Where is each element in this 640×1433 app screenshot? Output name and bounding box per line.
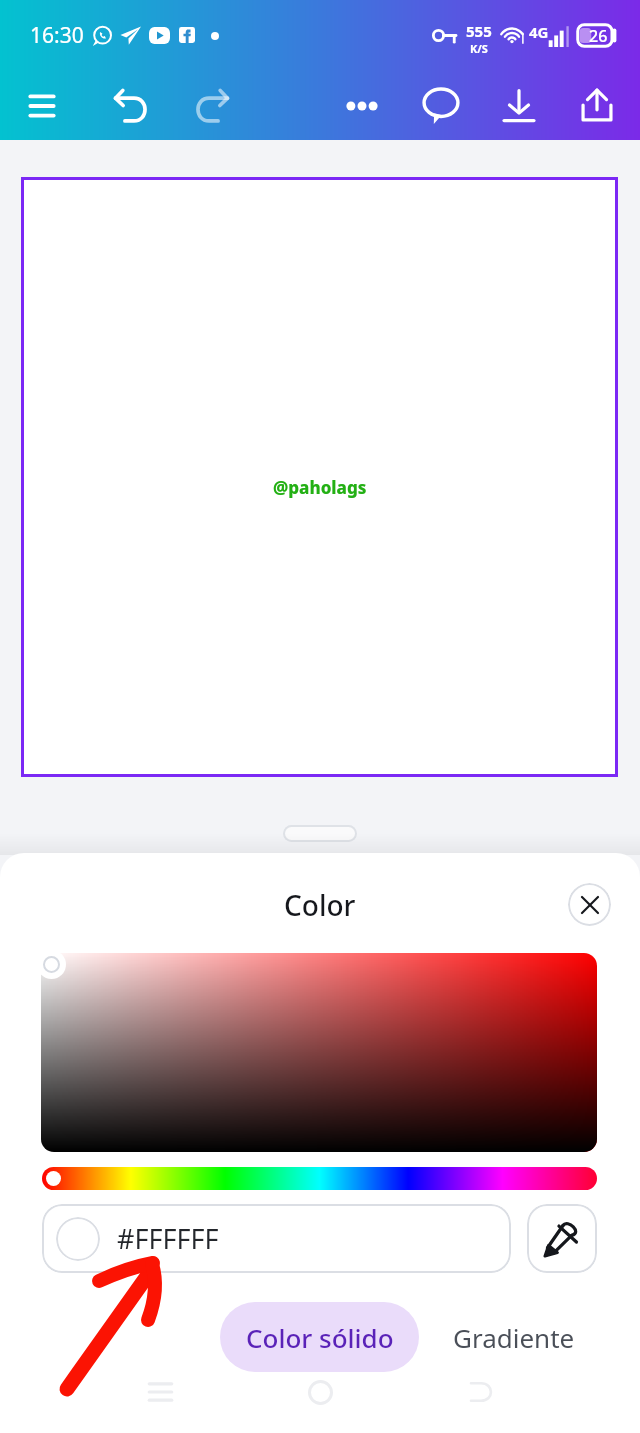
button[interactable]: Home [290,1362,350,1422]
button[interactable]: Undo [105,80,155,130]
button[interactable]: Color selector [37,950,66,979]
button[interactable]: Close [568,883,611,926]
button[interactable]: Gradiente [435,1302,593,1372]
staticText: Color [284,886,356,924]
button[interactable]: Redo [187,80,237,130]
staticText: #FFFFFF [117,1220,219,1257]
staticText: 555 [466,21,492,41]
staticText: @paholags [273,476,367,499]
button[interactable]: Eyedropper [527,1204,597,1273]
staticText: 4G [529,22,549,42]
staticText: Color sólido [246,1320,394,1355]
button[interactable]: Drag handle [283,825,357,842]
button[interactable]: Color sólido [220,1302,419,1372]
staticText: 26 [589,25,608,47]
button[interactable]: Comment [416,81,466,131]
button[interactable]: Recents [130,1362,190,1422]
button[interactable]: Share [572,80,622,130]
staticText: K/S [470,41,488,56]
button[interactable]: Download [494,81,544,131]
staticText: Gradiente [453,1320,575,1355]
button[interactable]: Hue slider [42,1167,597,1190]
button[interactable]: Menu [17,81,67,131]
button[interactable]: More options [337,81,387,131]
staticText: 16:30 [30,21,84,50]
button[interactable]: Design canvas [24,180,615,774]
button[interactable]: #FFFFFF [42,1204,511,1273]
button[interactable]: Back [450,1362,510,1422]
